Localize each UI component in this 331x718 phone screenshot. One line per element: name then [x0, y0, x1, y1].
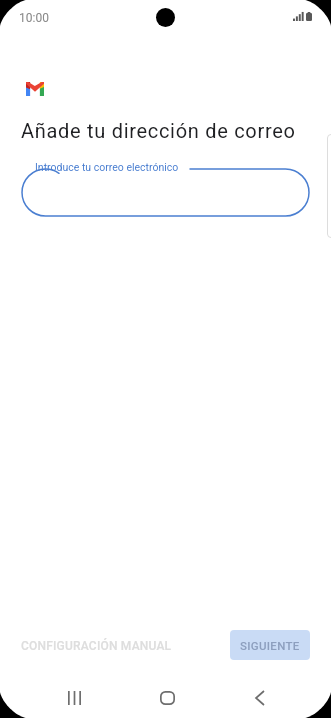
staticText: 10:00: [19, 11, 49, 25]
staticText: Introduce tu correo electrónico: [35, 161, 179, 173]
button[interactable]: CONFIGURACIÓN MANUAL: [13, 633, 180, 659]
button[interactable]: Home: [139, 678, 196, 718]
button[interactable]: Recents: [46, 678, 103, 718]
button[interactable]: SIGUIENTE: [230, 630, 310, 660]
staticText: Añade tu dirección de correo: [21, 119, 296, 142]
staticText: SIGUIENTE: [240, 639, 300, 652]
button[interactable]: Back: [231, 678, 288, 718]
staticText: CONFIGURACIÓN MANUAL: [21, 639, 172, 653]
